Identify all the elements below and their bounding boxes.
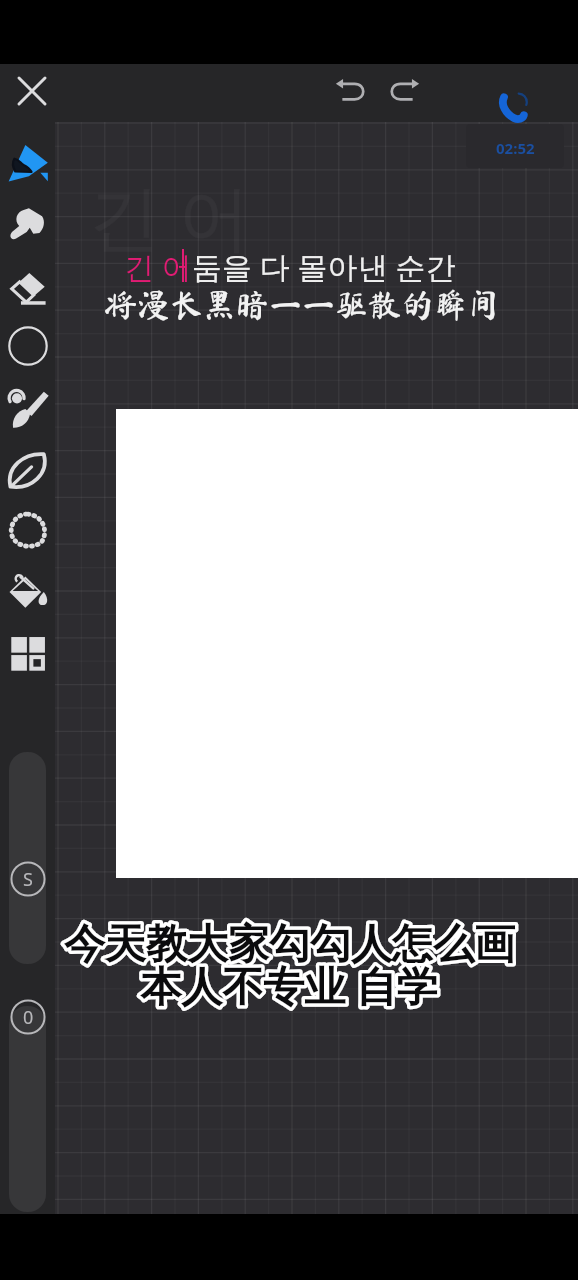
button[interactable]: Redo	[380, 67, 428, 115]
button[interactable]: Opacity	[9, 1006, 46, 1212]
staticText: 今天教大家勾勾人怎么画	[64, 919, 515, 971]
button[interactable]: Brush size	[9, 752, 46, 964]
button[interactable]: More	[4, 628, 52, 676]
staticText: 将漫长黑暗一一驱散的瞬间	[104, 288, 500, 321]
staticText: 0	[23, 1005, 34, 1030]
button[interactable]: Pen	[4, 140, 52, 188]
staticText: 本人不专业 自学	[140, 957, 438, 1013]
staticText: S	[23, 867, 33, 892]
staticText: 今天教大家勾勾人怎么画	[64, 919, 515, 971]
button[interactable]: Ongoing call	[466, 124, 564, 168]
button[interactable]: Smudge	[4, 201, 52, 249]
button[interactable]: Select	[4, 506, 52, 554]
button[interactable]: Eraser	[4, 264, 52, 312]
staticText: 本人不专业 自学	[140, 957, 438, 1013]
staticText: 긴 어	[88, 166, 251, 264]
button[interactable]: Brush	[4, 384, 52, 432]
staticText: 긴 어	[124, 246, 192, 287]
staticText: 02:52	[496, 138, 535, 158]
button[interactable]: Fill	[4, 567, 52, 615]
button[interactable]: Close	[8, 67, 56, 115]
staticText: 둠을 다 몰아낸 순간	[192, 246, 456, 287]
button[interactable]: Shape	[4, 322, 52, 370]
button[interactable]: Blur	[4, 446, 52, 494]
button[interactable]: Undo	[327, 67, 375, 115]
